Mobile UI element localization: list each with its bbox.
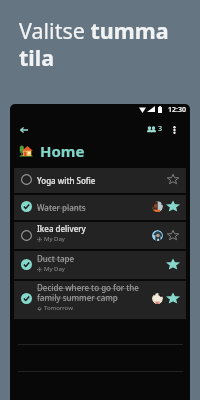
button[interactable]: Assigned person: [152, 230, 163, 241]
button[interactable]: Starred: [167, 258, 179, 270]
button[interactable]: Add star: [167, 229, 179, 241]
staticText: Valitse tumma tila: [19, 16, 189, 72]
button[interactable]: Completed: [14, 251, 186, 279]
staticText: Decide where to go for the family summer…: [37, 282, 147, 303]
button[interactable]: Completed: [14, 281, 186, 319]
button[interactable]: Starred: [167, 292, 179, 304]
button[interactable]: Mark complete: [14, 222, 186, 249]
button[interactable]: Starred: [167, 200, 179, 212]
button[interactable]: Assigned person: [152, 201, 163, 212]
staticText: Home: [40, 141, 85, 161]
staticText: Yoga with Sofie: [37, 175, 96, 186]
button[interactable]: Mark complete: [14, 168, 186, 193]
button[interactable]: Shared with 3 people: [144, 121, 166, 137]
button[interactable]: Back: [14, 120, 34, 140]
staticText: My Day: [44, 235, 65, 243]
button[interactable]: Add star: [167, 173, 179, 185]
button[interactable]: Assigned person: [152, 293, 163, 304]
staticText: Tomorrow: [44, 304, 73, 312]
staticText: Duct tape: [37, 253, 75, 264]
staticText: 12:30: [168, 105, 186, 115]
button[interactable]: Completed: [14, 195, 186, 220]
button[interactable]: Mark complete: [21, 174, 32, 185]
button[interactable]: Completed: [21, 201, 32, 212]
staticText: Ikea delivery: [37, 223, 86, 234]
button[interactable]: More options: [167, 123, 181, 137]
button[interactable]: Mark complete: [21, 230, 32, 241]
staticText: My Day: [44, 265, 65, 273]
staticText: Water plants: [37, 202, 86, 213]
staticText: 3: [158, 124, 163, 134]
button[interactable]: Completed: [21, 293, 32, 304]
button[interactable]: Completed: [21, 259, 32, 270]
